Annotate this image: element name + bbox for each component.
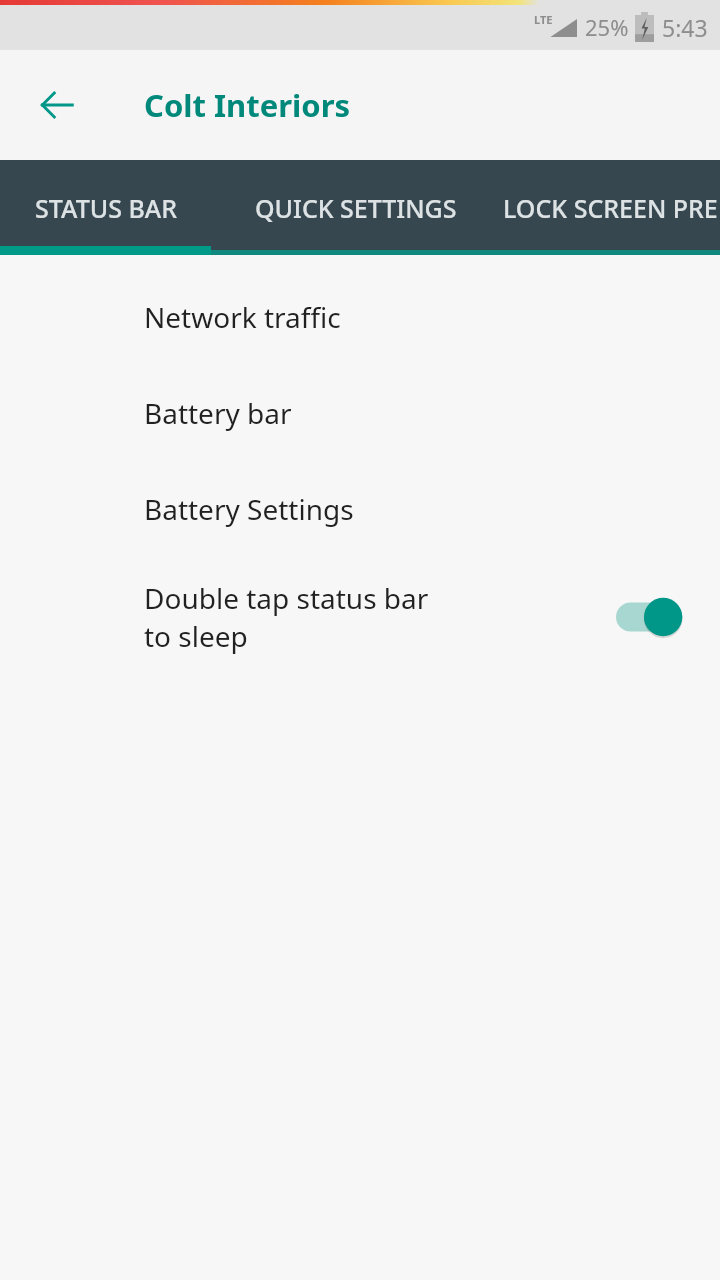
staticText: Network traffic [144, 298, 341, 336]
button[interactable]: Back [26, 74, 88, 136]
staticText: 5:43 [662, 12, 708, 43]
button[interactable]: Double tap status bar to sleep toggle [616, 591, 690, 643]
button[interactable]: Double tap status bar to sleep [0, 557, 720, 677]
staticText: QUICK SETTINGS [255, 191, 457, 225]
staticText: LTE [534, 12, 553, 27]
button[interactable]: STATUS BAR [0, 160, 211, 255]
staticText: STATUS BAR [35, 191, 177, 225]
staticText: Colt Interiors [144, 84, 351, 126]
button[interactable]: Battery bar [0, 365, 720, 461]
staticText: Double tap status bar to sleep [144, 579, 429, 655]
button[interactable]: QUICK SETTINGS [211, 160, 501, 255]
staticText: Battery bar [144, 394, 292, 432]
staticText: LOCK SCREEN PRE [503, 191, 718, 225]
staticText: 25% [585, 12, 629, 42]
button[interactable]: LOCK SCREEN PRE [501, 160, 720, 255]
button[interactable]: Battery Settings [0, 461, 720, 557]
button[interactable]: Network traffic [0, 269, 720, 365]
staticText: Battery Settings [144, 490, 354, 528]
